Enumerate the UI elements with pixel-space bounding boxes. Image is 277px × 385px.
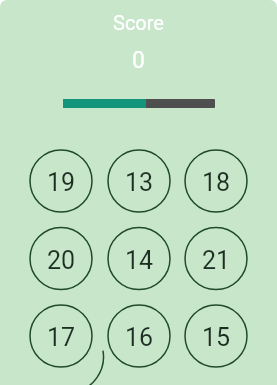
staticText: 19 — [47, 168, 76, 197]
staticText: Score — [0, 11, 277, 34]
button[interactable]: 21 — [185, 228, 247, 290]
staticText: 21 — [202, 246, 231, 275]
button[interactable]: 19 — [30, 150, 92, 212]
staticText: 13 — [125, 168, 154, 197]
button[interactable]: 17 — [30, 305, 92, 367]
staticText: 16 — [125, 323, 154, 352]
button[interactable]: 16 — [108, 305, 170, 367]
button[interactable]: 15 — [185, 305, 247, 367]
button[interactable]: 18 — [185, 150, 247, 212]
staticText: 20 — [47, 246, 76, 275]
staticText: 18 — [202, 168, 231, 197]
staticText: 15 — [202, 323, 231, 352]
staticText: 17 — [47, 323, 76, 352]
button[interactable]: 14 — [108, 228, 170, 290]
button[interactable]: 20 — [30, 228, 92, 290]
staticText: 0 — [0, 47, 277, 74]
staticText: 14 — [125, 246, 154, 275]
button[interactable]: 13 — [108, 150, 170, 212]
